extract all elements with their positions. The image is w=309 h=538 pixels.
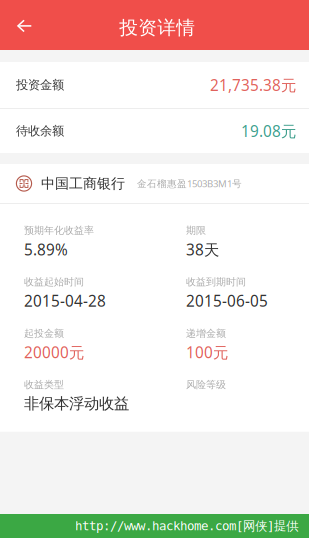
staticText: 期限: [186, 224, 206, 237]
staticText: 投资详情: [119, 16, 195, 39]
staticText: 19.08元: [241, 121, 296, 141]
staticText: 待收余额: [16, 123, 64, 139]
staticText: 收益到期时间: [186, 276, 246, 288]
staticText: 投资金额: [16, 77, 64, 93]
staticText: 预期年化收益率: [24, 224, 94, 237]
staticText: 2015-06-05: [186, 290, 268, 311]
staticText: 递增金额: [186, 327, 226, 340]
staticText: 中国工商银行: [41, 175, 125, 192]
staticText: 起投金额: [24, 327, 64, 340]
staticText: 20000元: [24, 342, 84, 363]
staticText: 收益类型: [24, 378, 64, 391]
staticText: 金石榴惠盈1503B3M1号: [137, 177, 242, 190]
staticText: 38天: [186, 239, 219, 260]
staticText: 5.89%: [24, 239, 68, 260]
staticText: 非保本浮动收益: [24, 394, 129, 413]
staticText: 2015-04-28: [24, 290, 106, 311]
staticText: 21,735.38元: [210, 75, 296, 95]
staticText: 收益起始时间: [24, 276, 84, 288]
button[interactable]: 返回: [9, 13, 39, 39]
staticText: http://www.hackhome.com[网侠]提供: [75, 518, 298, 534]
staticText: 风险等级: [186, 378, 226, 391]
staticText: 100元: [186, 342, 228, 363]
